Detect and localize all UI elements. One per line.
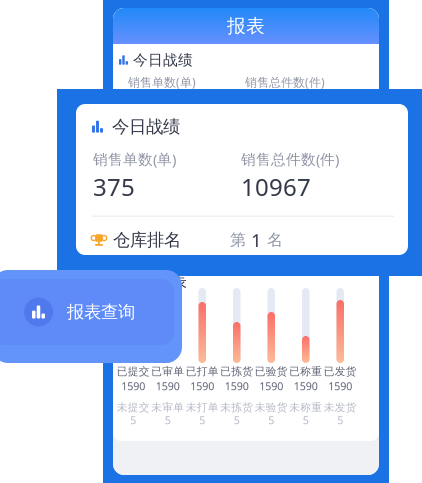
staticText: 10967 [241, 171, 311, 203]
staticText: 1590 [156, 379, 180, 393]
staticText: 未拣货 [220, 401, 253, 414]
staticText: 未称重 [289, 401, 322, 414]
staticText: 未提交 [117, 401, 150, 414]
button[interactable]: 报表查询 [0, 270, 182, 363]
staticText: 名 [267, 230, 283, 250]
staticText: 1590 [259, 379, 283, 393]
staticText: 未发货 [324, 401, 357, 414]
staticText: 已称重 [289, 365, 322, 378]
staticText: 销售总件数(件) [245, 74, 325, 90]
staticText: 第 [230, 230, 246, 250]
staticText: 5 [268, 413, 274, 427]
staticText: 1 [251, 228, 262, 252]
staticText: 未验货 [255, 401, 288, 414]
staticText: 报表查询 [67, 301, 135, 323]
staticText: 5 [130, 413, 136, 427]
staticText: 1590 [121, 379, 145, 393]
staticText: 已验货 [255, 365, 288, 378]
staticText: 5 [303, 413, 309, 427]
staticText: 已拣货 [220, 365, 253, 378]
staticText: 5 [337, 413, 343, 427]
staticText: 未打单 [186, 401, 219, 414]
staticText: 1590 [294, 379, 318, 393]
staticText: 1590 [225, 379, 249, 393]
staticText: 报表 [227, 14, 265, 37]
staticText: 销售总件数(件) [241, 149, 339, 169]
staticText: 已提交 [117, 365, 150, 378]
staticText: 1590 [328, 379, 352, 393]
staticText: 今日战绩 [133, 51, 193, 69]
staticText: 销售单数(单) [128, 74, 196, 90]
staticText: 5 [165, 413, 171, 427]
staticText: 375 [93, 171, 135, 203]
staticText: 销售单数(单) [93, 149, 176, 169]
staticText: 已发货 [324, 365, 357, 378]
staticText: 已打单 [186, 365, 219, 378]
staticText: 5 [199, 413, 205, 427]
staticText: 375 [128, 92, 161, 119]
staticText: 仓库排名 [113, 229, 181, 251]
staticText: 今日战绩 [112, 116, 180, 137]
staticText: 10967 [245, 92, 300, 119]
staticText: 5 [234, 413, 240, 427]
staticText: 已审单 [151, 365, 184, 378]
staticText: 1590 [190, 379, 214, 393]
staticText: 出库报表 [123, 271, 187, 291]
staticText: 未审单 [151, 401, 184, 414]
